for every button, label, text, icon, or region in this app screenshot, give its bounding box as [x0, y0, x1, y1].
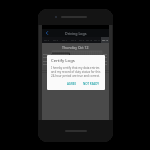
- button[interactable]: Oct 12: [101, 37, 109, 43]
- staticText: Oct 7: [62, 39, 67, 42]
- button[interactable]: AGREE: [65, 81, 78, 87]
- staticText: AGREE: [67, 82, 76, 86]
- button[interactable]: Oct 11: [93, 37, 101, 43]
- button[interactable]: Oct 7: [60, 37, 69, 43]
- staticText: Driving Logs: [65, 31, 87, 36]
- staticText: Oct 10: [86, 39, 93, 42]
- staticText: Oct 9: [79, 39, 84, 42]
- staticText: Oct 8: [71, 39, 76, 42]
- button[interactable]: Back: [42, 29, 51, 37]
- button[interactable]: Oct 9: [77, 37, 85, 43]
- button[interactable]: Oct 8: [69, 37, 77, 43]
- staticText: Oct 5: [44, 39, 49, 42]
- staticText: I hereby certify that my data entries an…: [51, 66, 101, 78]
- button[interactable]: Oct 10: [85, 37, 93, 43]
- staticText: Oct 11: [94, 39, 101, 42]
- staticText: Thursday Oct 12: [62, 45, 89, 50]
- staticText: Certify Logs: [51, 58, 75, 64]
- button[interactable]: Oct 5: [42, 37, 51, 43]
- staticText: Oct 12: [102, 39, 109, 42]
- staticText: Oct 6: [53, 39, 58, 42]
- staticText: NOT READY: [83, 82, 99, 86]
- button[interactable]: NOT READY: [81, 81, 101, 87]
- button[interactable]: Oct 6: [51, 37, 60, 43]
